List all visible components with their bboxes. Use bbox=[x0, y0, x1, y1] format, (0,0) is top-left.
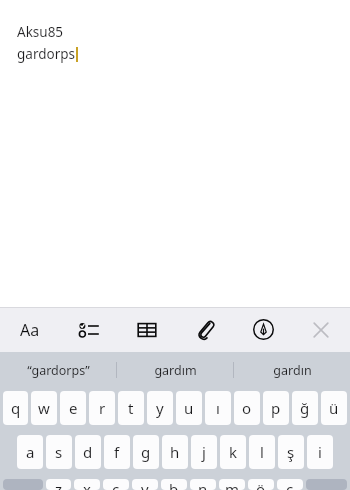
button[interactable]: “gardorps” bbox=[0, 352, 116, 388]
staticText: r bbox=[99, 398, 106, 418]
button[interactable]: a bbox=[17, 435, 43, 469]
button[interactable]: g bbox=[133, 435, 159, 469]
staticText: x bbox=[83, 479, 91, 490]
staticText: n bbox=[198, 479, 208, 490]
button[interactable]: i bbox=[307, 435, 333, 469]
button[interactable]: gardım bbox=[117, 352, 233, 388]
staticText: ü bbox=[329, 398, 339, 418]
staticText: j bbox=[202, 442, 206, 462]
button[interactable]: Insert table bbox=[118, 307, 176, 352]
staticText: a bbox=[26, 442, 35, 462]
button[interactable]: z bbox=[46, 479, 71, 490]
button[interactable]: m bbox=[219, 479, 245, 490]
button[interactable]: Markup bbox=[234, 307, 292, 352]
staticText: u bbox=[184, 398, 194, 418]
button[interactable]: e bbox=[60, 391, 86, 425]
button[interactable]: Checklist bbox=[59, 307, 118, 352]
button[interactable]: c bbox=[103, 479, 129, 490]
button[interactable]: Attach file bbox=[176, 307, 234, 352]
button[interactable]: Hide keyboard bbox=[292, 307, 350, 352]
button[interactable]: f bbox=[104, 435, 130, 469]
button[interactable]: l bbox=[249, 435, 275, 469]
staticText: Aksu85 bbox=[17, 23, 64, 41]
staticText: z bbox=[55, 479, 63, 490]
staticText: “gardorps” bbox=[27, 362, 90, 379]
staticText: t bbox=[128, 398, 134, 418]
button[interactable]: ü bbox=[321, 391, 347, 425]
staticText: Aa bbox=[20, 319, 40, 341]
staticText: v bbox=[141, 479, 149, 490]
staticText: s bbox=[55, 442, 63, 462]
staticText: b bbox=[169, 479, 179, 490]
button[interactable]: q bbox=[3, 391, 28, 425]
staticText: k bbox=[229, 442, 238, 462]
button[interactable]: b bbox=[161, 479, 187, 490]
staticText: p bbox=[271, 398, 281, 418]
staticText: l bbox=[260, 442, 264, 462]
staticText: ı bbox=[216, 398, 220, 418]
staticText: q bbox=[11, 398, 21, 418]
staticText: h bbox=[170, 442, 180, 462]
staticText: g bbox=[141, 442, 151, 462]
staticText: ğ bbox=[300, 398, 310, 418]
staticText: y bbox=[156, 398, 164, 418]
button[interactable]: Shift bbox=[3, 479, 43, 490]
staticText: c bbox=[112, 479, 120, 490]
staticText: ç bbox=[286, 479, 294, 490]
staticText: e bbox=[69, 398, 78, 418]
button[interactable]: ğ bbox=[292, 391, 318, 425]
button[interactable]: ş bbox=[278, 435, 304, 469]
button[interactable]: ç bbox=[277, 479, 303, 490]
staticText: m bbox=[225, 479, 240, 490]
button[interactable]: r bbox=[89, 391, 115, 425]
button[interactable]: v bbox=[132, 479, 158, 490]
staticText: f bbox=[114, 442, 120, 462]
button[interactable]: gardın bbox=[234, 352, 350, 388]
button[interactable]: y bbox=[147, 391, 173, 425]
staticText: gardorps bbox=[17, 45, 75, 63]
button[interactable]: Text format bbox=[0, 307, 59, 352]
staticText: gardın bbox=[273, 362, 312, 379]
button[interactable]: j bbox=[191, 435, 217, 469]
staticText: d bbox=[83, 442, 93, 462]
button[interactable]: t bbox=[118, 391, 144, 425]
button[interactable]: Backspace bbox=[306, 479, 347, 490]
staticText: i bbox=[318, 442, 322, 462]
button[interactable]: ö bbox=[248, 479, 274, 490]
button[interactable]: o bbox=[234, 391, 260, 425]
button[interactable]: k bbox=[220, 435, 246, 469]
staticText: o bbox=[242, 398, 252, 418]
button[interactable]: w bbox=[31, 391, 57, 425]
staticText: w bbox=[38, 398, 50, 418]
staticText: ş bbox=[287, 442, 295, 462]
button[interactable]: x bbox=[74, 479, 100, 490]
button[interactable]: n bbox=[190, 479, 216, 490]
button[interactable]: u bbox=[176, 391, 202, 425]
button[interactable]: s bbox=[46, 435, 72, 469]
staticText: gardım bbox=[154, 362, 197, 379]
button[interactable]: d bbox=[75, 435, 101, 469]
button[interactable]: p bbox=[263, 391, 289, 425]
button[interactable]: ı bbox=[205, 391, 231, 425]
staticText: ö bbox=[256, 479, 266, 490]
button[interactable]: h bbox=[162, 435, 188, 469]
